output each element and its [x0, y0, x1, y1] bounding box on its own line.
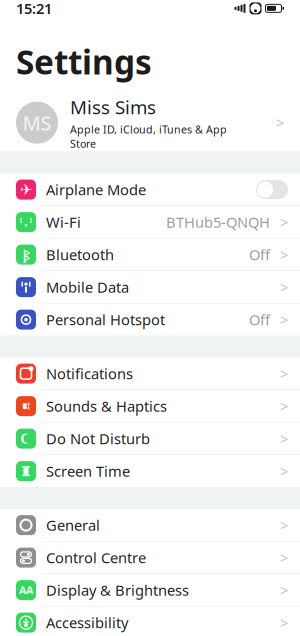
- button[interactable]: ✈: [0, 174, 300, 206]
- staticText: Mobile Data: [46, 277, 129, 297]
- staticText: Apple ID, iCloud, iTunes & App Store: [70, 122, 227, 151]
- staticText: >: [280, 461, 288, 481]
- staticText: >: [280, 364, 288, 383]
- staticText: Off: [249, 245, 270, 264]
- staticText: Personal Hotspot: [46, 310, 165, 329]
- staticText: Display & Brightness: [46, 580, 189, 600]
- staticText: Control Centre: [46, 548, 146, 567]
- button[interactable]: AA: [0, 574, 300, 606]
- button[interactable]: Wi-Fi: [0, 206, 300, 238]
- staticText: Wi-Fi: [46, 212, 81, 232]
- button[interactable]: Screen Time: [0, 455, 300, 487]
- staticText: >: [280, 310, 288, 329]
- button[interactable]: Control Centre: [0, 542, 300, 574]
- staticText: ᛒ: [22, 245, 29, 264]
- button[interactable]: Sounds & Haptics: [0, 390, 300, 422]
- staticText: Do Not Disturb: [46, 429, 150, 448]
- staticText: >: [280, 245, 288, 264]
- staticText: >: [280, 613, 288, 632]
- staticText: Bluetooth: [46, 245, 114, 264]
- staticText: Sounds & Haptics: [46, 396, 167, 416]
- button[interactable]: Personal Hotspot: [0, 304, 300, 336]
- staticText: >: [280, 277, 288, 297]
- staticText: >: [280, 515, 288, 535]
- staticText: 15:21: [16, 0, 52, 18]
- staticText: >: [280, 212, 288, 232]
- staticText: Airplane Mode: [46, 180, 146, 199]
- staticText: Notifications: [46, 364, 133, 383]
- staticText: >: [280, 396, 288, 416]
- staticText: >: [280, 548, 288, 567]
- button[interactable]: Notifications: [0, 358, 300, 390]
- button[interactable]: ᛒ: [0, 239, 300, 271]
- staticText: MS: [22, 109, 51, 136]
- staticText: ✈: [20, 181, 32, 198]
- staticText: >: [280, 429, 288, 448]
- button[interactable]: Mobile Data: [0, 271, 300, 303]
- button[interactable]: Accessibility: [0, 607, 300, 636]
- button[interactable]: General: [0, 509, 300, 541]
- staticText: Screen Time: [46, 461, 130, 481]
- staticText: Settings: [16, 39, 152, 84]
- staticText: Off: [249, 310, 270, 329]
- button[interactable]: MS: [0, 94, 300, 152]
- staticText: AA: [19, 583, 33, 597]
- staticText: General: [46, 515, 100, 535]
- staticText: Accessibility: [46, 613, 128, 632]
- staticText: >: [280, 580, 288, 600]
- staticText: BTHub5-QNQH: [166, 212, 270, 232]
- staticText: Miss Sims: [70, 95, 156, 119]
- button[interactable]: Do Not Disturb: [0, 423, 300, 455]
- staticText: >: [276, 113, 284, 132]
